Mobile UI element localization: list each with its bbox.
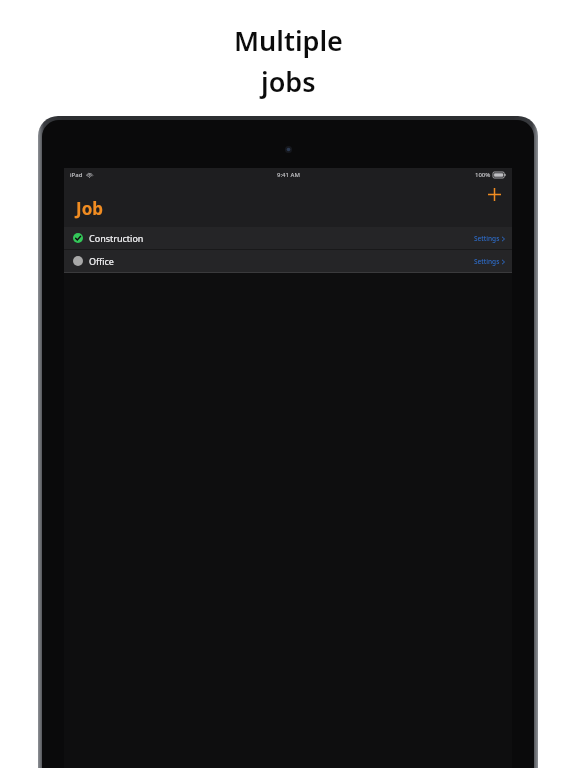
button[interactable]: Office <box>64 250 512 272</box>
staticText: Settings <box>474 257 500 266</box>
button[interactable]: Settings <box>474 257 505 266</box>
staticText: Office <box>89 255 114 267</box>
staticText: Multiple <box>234 22 343 59</box>
staticText: 9:41 AM <box>277 171 300 179</box>
staticText: jobs <box>261 63 316 100</box>
button[interactable]: Construction <box>64 227 512 249</box>
staticText: 100% <box>475 171 491 179</box>
staticText: Construction <box>89 232 144 244</box>
staticText: Settings <box>474 234 500 243</box>
button[interactable]: Settings <box>474 234 505 243</box>
button[interactable]: Add job <box>483 183 505 205</box>
staticText: Job <box>76 197 103 220</box>
staticText: iPad <box>70 171 83 179</box>
